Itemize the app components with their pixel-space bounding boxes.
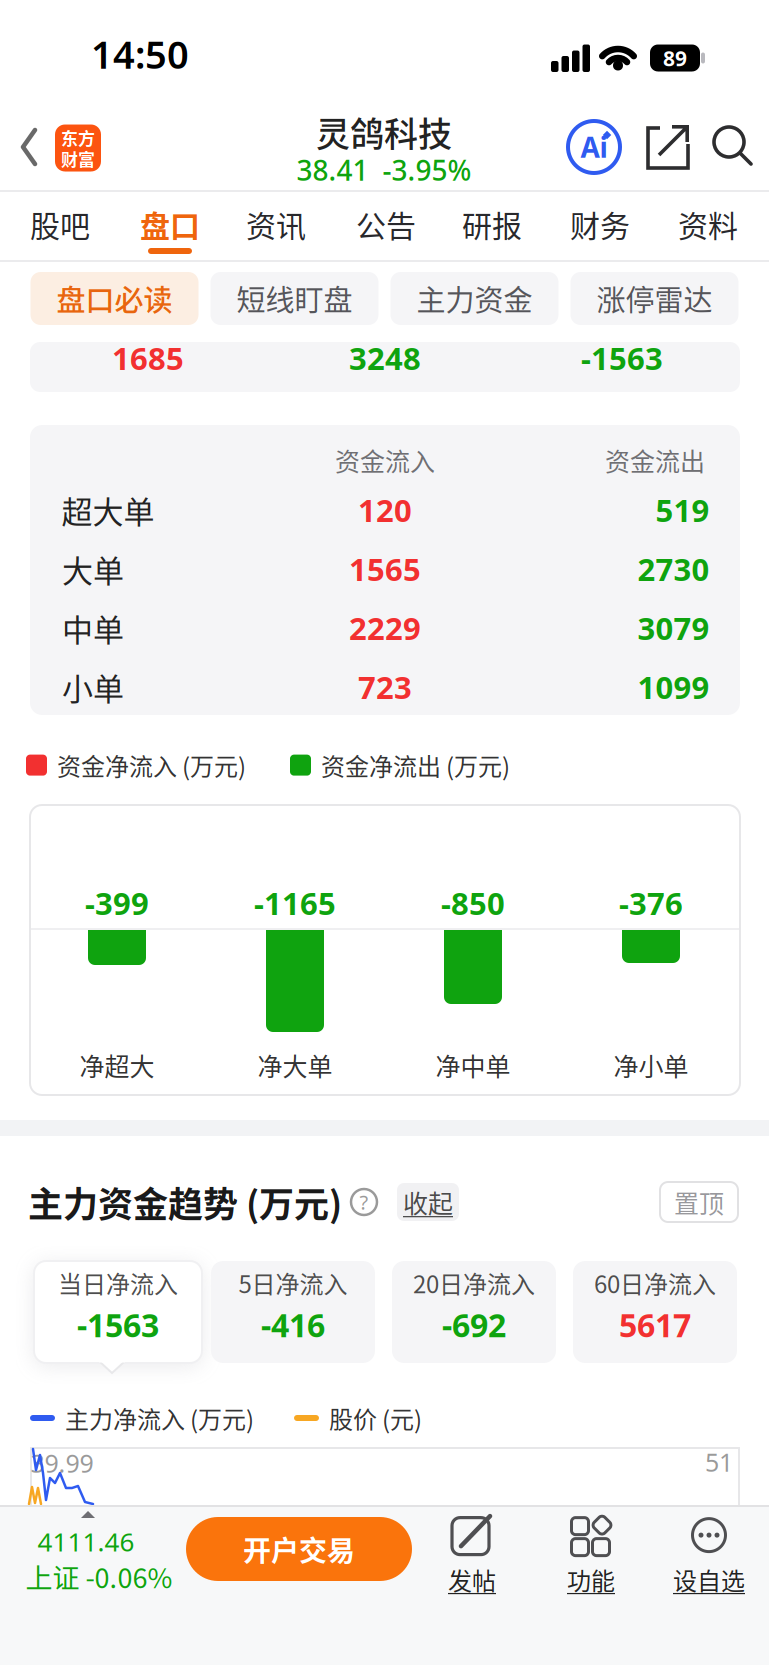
button[interactable]: 当日净流入: [34, 1261, 202, 1363]
staticText: 资金流出: [605, 442, 705, 478]
staticText: -376: [619, 882, 683, 924]
button[interactable]: [21, 128, 37, 166]
button[interactable]: 功能: [567, 1515, 615, 1597]
staticText: 主力净流入 (万元): [65, 1401, 254, 1435]
staticText: -850: [441, 882, 505, 924]
staticText: -416: [261, 1303, 325, 1347]
button[interactable]: 财务: [570, 202, 630, 246]
staticText: 公告: [356, 202, 416, 246]
staticText: 大单: [62, 547, 124, 591]
staticText: 当日净流入: [58, 1265, 178, 1300]
staticText: -1563: [581, 337, 663, 379]
staticText: 收起: [403, 1184, 453, 1220]
staticText: 20日净流入: [413, 1265, 535, 1300]
staticText: 39.99: [30, 1446, 93, 1480]
staticText: 1685: [112, 337, 184, 379]
staticText: 净大单: [257, 1047, 332, 1083]
staticText: 置顶: [674, 1184, 724, 1220]
staticText: 资料: [678, 202, 738, 246]
staticText: 723: [358, 666, 412, 708]
staticText: Ai: [580, 128, 607, 166]
staticText: 股价 (元): [329, 1401, 422, 1435]
staticText: 功能: [567, 1562, 615, 1597]
button[interactable]: [645, 125, 691, 171]
button[interactable]: 开户交易: [186, 1517, 412, 1581]
staticText: 5617: [619, 1303, 691, 1347]
button[interactable]: 20日净流入: [392, 1261, 556, 1363]
staticText: 主力资金趋势 (万元): [28, 1177, 342, 1227]
staticText: ?: [359, 1188, 368, 1216]
staticText: -1563: [77, 1303, 159, 1347]
staticText: 1565: [349, 548, 421, 590]
staticText: 1099: [637, 666, 709, 708]
staticText: 超大单: [61, 488, 154, 532]
staticText: 小单: [62, 665, 124, 709]
staticText: 14:50: [91, 28, 189, 80]
button[interactable]: 涨停雷达: [570, 272, 738, 325]
staticText: 89: [663, 44, 687, 72]
button[interactable]: 盘口必读: [30, 272, 198, 325]
staticText: 中单: [62, 606, 124, 650]
staticText: 3079: [637, 607, 709, 649]
staticText: 股吧: [30, 202, 90, 246]
staticText: 资金净流入 (万元): [57, 748, 246, 782]
staticText: 净小单: [613, 1047, 688, 1083]
button[interactable]: 设自选: [673, 1515, 745, 1597]
button[interactable]: 东方: [55, 124, 101, 171]
staticText: 2730: [637, 548, 709, 590]
button[interactable]: 置顶: [660, 1182, 738, 1222]
button[interactable]: 60日净流入: [573, 1261, 737, 1363]
staticText: 短线盯盘: [236, 277, 352, 319]
staticText: 设自选: [673, 1562, 745, 1597]
button[interactable]: [712, 126, 754, 168]
staticText: 财务: [570, 202, 630, 246]
staticText: 519: [655, 489, 709, 531]
button[interactable]: 研报: [462, 202, 522, 246]
button[interactable]: 公告: [356, 202, 416, 246]
staticText: 发帖: [448, 1562, 496, 1597]
button[interactable]: 资料: [678, 202, 738, 246]
staticText: 2229: [349, 607, 421, 649]
staticText: 净中单: [435, 1047, 510, 1083]
staticText: 研报: [462, 202, 522, 246]
staticText: -692: [442, 1303, 506, 1347]
button[interactable]: 收起: [397, 1183, 459, 1221]
staticText: 资金净流出 (万元): [321, 748, 510, 782]
button[interactable]: 盘口: [140, 202, 200, 246]
staticText: 5日净流入: [238, 1265, 347, 1300]
staticText: 盘口: [140, 202, 200, 246]
staticText: 38.41 -3.95%: [296, 151, 471, 189]
button[interactable]: 资讯: [246, 202, 306, 246]
staticText: 盘口必读: [56, 277, 172, 319]
staticText: 60日净流入: [594, 1265, 716, 1300]
button[interactable]: 主力资金: [390, 272, 558, 325]
staticText: 120: [358, 489, 412, 531]
button[interactable]: 4111.46: [25, 1524, 172, 1594]
staticText: 4111.46: [37, 1524, 134, 1559]
staticText: 3248: [349, 337, 421, 379]
button[interactable]: 短线盯盘: [210, 272, 378, 325]
staticText: 财富: [61, 146, 95, 171]
staticText: 51: [705, 1445, 733, 1479]
staticText: 资金流入: [335, 442, 435, 478]
staticText: 开户交易: [243, 1529, 355, 1569]
button[interactable]: 股吧: [30, 202, 90, 246]
button[interactable]: 发帖: [448, 1515, 496, 1597]
staticText: 东方: [61, 125, 95, 150]
staticText: -399: [85, 882, 149, 924]
staticText: 灵鸽科技: [316, 107, 452, 157]
staticText: 上证 -0.06%: [25, 1557, 172, 1596]
staticText: 涨停雷达: [596, 277, 712, 319]
staticText: 主力资金: [416, 277, 532, 319]
button[interactable]: 5日净流入: [211, 1261, 375, 1363]
button[interactable]: Ai: [568, 121, 620, 173]
staticText: -1165: [254, 882, 336, 924]
staticText: 资讯: [246, 202, 306, 246]
staticText: 净超大: [79, 1047, 154, 1083]
